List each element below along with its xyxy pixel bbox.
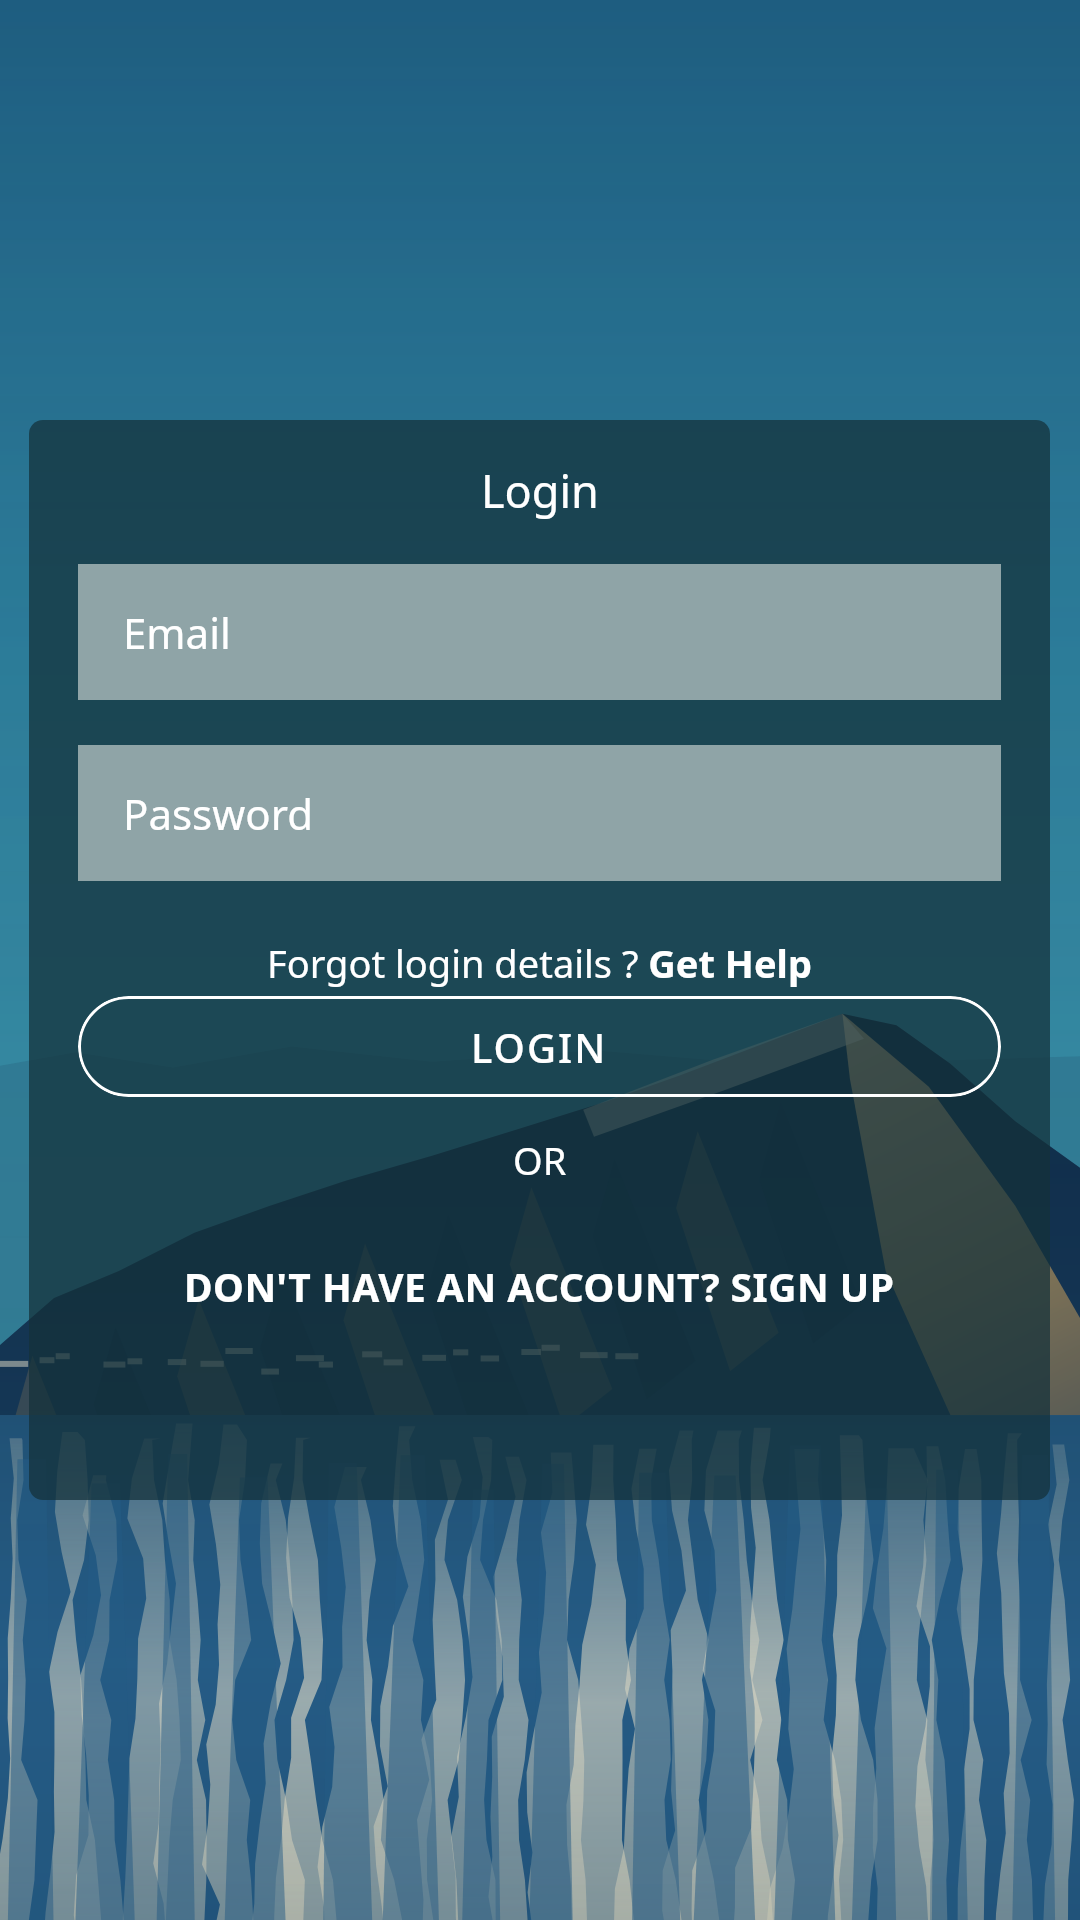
staticText: Password xyxy=(123,785,313,842)
button[interactable]: Password xyxy=(78,745,1001,881)
staticText: OR xyxy=(513,1134,567,1186)
button[interactable]: Forgot login details ? Get Help xyxy=(29,933,1050,993)
button[interactable]: Email xyxy=(78,564,1001,700)
staticText: Email xyxy=(123,604,231,661)
staticText: LOGIN xyxy=(471,1020,608,1074)
staticText: DON'T HAVE AN ACCOUNT? SIGN UP xyxy=(184,1260,895,1313)
button[interactable]: LOGIN xyxy=(78,996,1001,1097)
staticText: Login xyxy=(481,460,599,521)
button[interactable]: DON'T HAVE AN ACCOUNT? SIGN UP xyxy=(29,1251,1050,1321)
staticText: Forgot login details ? Get Help xyxy=(267,937,812,989)
